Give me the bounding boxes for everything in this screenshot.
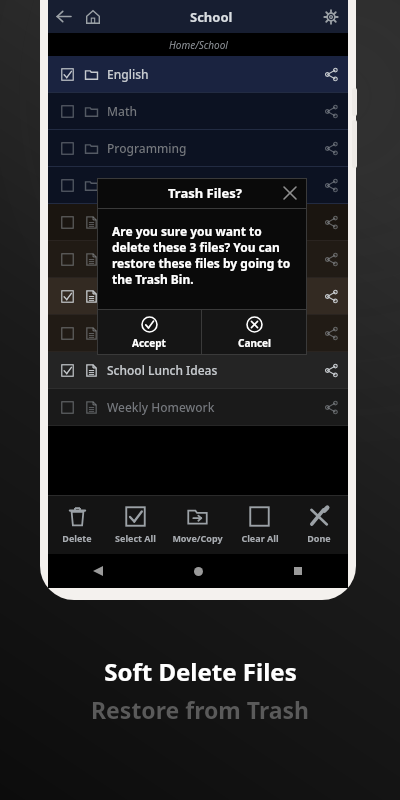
staticText: Are you sure you want to delete these 3 … [112, 223, 297, 287]
staticText: English [107, 66, 149, 82]
button[interactable]: Science [48, 167, 348, 203]
button[interactable]: Essay Draft [48, 241, 348, 277]
button[interactable]: Move/Copy [165, 496, 230, 554]
button[interactable]: Share Math [314, 93, 348, 129]
button[interactable]: Programming [48, 130, 348, 166]
staticText: Math [107, 103, 138, 119]
staticText: Essay Draft [107, 251, 172, 267]
button[interactable]: Share Weekly Homework [314, 389, 348, 425]
button[interactable]: Home [148, 554, 248, 588]
staticText: Cancel [238, 336, 272, 350]
staticText: School [190, 8, 233, 26]
button[interactable]: Math [48, 93, 348, 129]
staticText: Book Report [107, 325, 179, 341]
button[interactable]: Share English [314, 56, 348, 92]
button[interactable]: Notes [48, 204, 348, 240]
staticText: Trash Files? [168, 184, 242, 202]
staticText: Delete [62, 532, 92, 544]
staticText: Select All [115, 532, 156, 544]
button[interactable]: Clear All [230, 496, 289, 554]
button[interactable]: Reading List [48, 278, 348, 314]
staticText: School Lunch Ideas [107, 362, 218, 378]
staticText: Programming [107, 140, 187, 156]
button[interactable]: Weekly Homework [48, 389, 348, 425]
button[interactable]: Recents [248, 554, 348, 588]
staticText: Notes [107, 214, 141, 230]
staticText: Restore from Trash [91, 694, 309, 725]
staticText: Done [307, 532, 331, 544]
button[interactable]: Share Science [314, 167, 348, 203]
button[interactable]: Share Programming [314, 130, 348, 166]
button[interactable]: Share Reading List [314, 278, 348, 314]
staticText: Soft Delete Files [104, 655, 297, 688]
button[interactable]: Back [48, 554, 148, 588]
staticText: Science [107, 177, 150, 193]
button[interactable]: Done [289, 496, 348, 554]
button[interactable]: Share Book Report [314, 315, 348, 351]
staticText: Move/Copy [172, 532, 223, 544]
button[interactable]: Share Notes [314, 204, 348, 240]
button[interactable]: English [48, 56, 348, 92]
button[interactable]: Close [273, 178, 307, 208]
button[interactable]: Select All [106, 496, 165, 554]
staticText: Clear All [241, 532, 279, 544]
button[interactable]: Share School Lunch Ideas [314, 352, 348, 388]
button[interactable]: Cancel [202, 310, 307, 355]
staticText: Home/School [169, 38, 228, 52]
button[interactable]: Delete [48, 496, 106, 554]
button[interactable]: Book Report [48, 315, 348, 351]
button[interactable]: Home [78, 0, 108, 33]
button[interactable]: Accept [97, 310, 201, 355]
staticText: Accept [132, 336, 166, 350]
button[interactable]: Settings [314, 0, 348, 33]
button[interactable]: School Lunch Ideas [48, 352, 348, 388]
button[interactable]: Share Essay Draft [314, 241, 348, 277]
button[interactable]: Home/School [48, 33, 348, 56]
staticText: Weekly Homework [107, 399, 215, 415]
button[interactable]: Back [48, 0, 78, 33]
